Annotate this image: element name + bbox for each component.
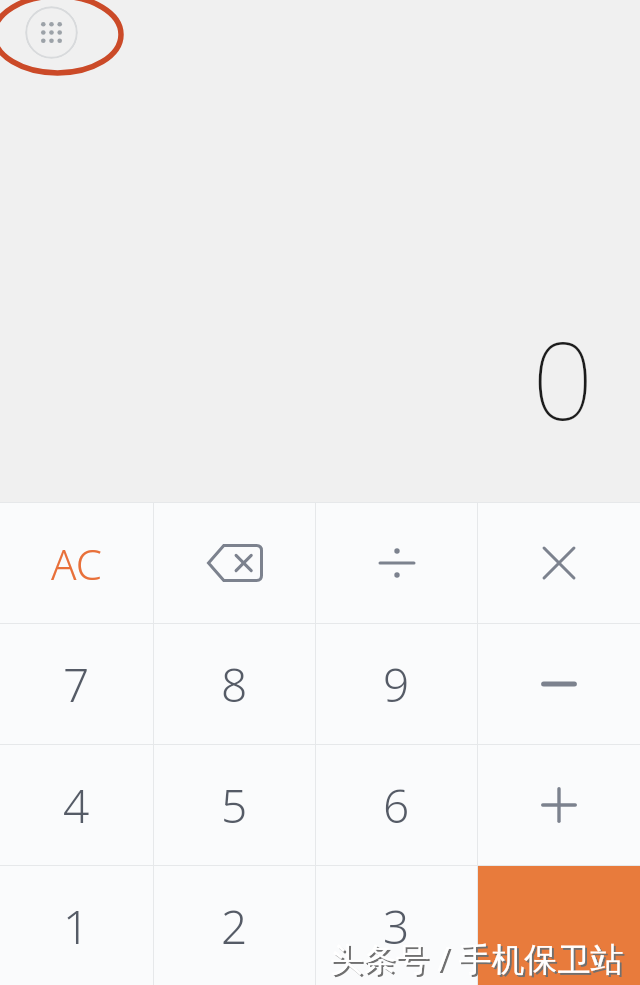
button[interactable]: Apps (25, 6, 78, 59)
staticText: 1 (63, 895, 90, 958)
button[interactable]: Divide (316, 503, 477, 623)
button[interactable]: Multiply (478, 503, 640, 623)
button[interactable]: 4 (0, 745, 153, 865)
staticText: 8 (221, 653, 248, 716)
button[interactable]: 1 (0, 866, 153, 985)
staticText: 头条号 / 手机保卫站 (332, 938, 626, 983)
staticText: 6 (383, 774, 410, 837)
button[interactable]: 5 (154, 745, 315, 865)
button[interactable]: Minus (478, 624, 640, 744)
staticText: 5 (221, 774, 248, 837)
button[interactable]: 8 (154, 624, 315, 744)
button[interactable]: Equals (478, 866, 640, 985)
button[interactable]: 2 (154, 866, 315, 985)
staticText: AC (51, 535, 102, 592)
staticText: 4 (63, 774, 90, 837)
button[interactable]: 3 (316, 866, 477, 985)
staticText: 7 (63, 653, 90, 716)
staticText: 0 (532, 305, 594, 452)
staticText: 9 (383, 653, 410, 716)
button[interactable]: 7 (0, 624, 153, 744)
staticText: 2 (221, 895, 248, 958)
button[interactable]: 9 (316, 624, 477, 744)
staticText: 3 (383, 895, 410, 958)
button[interactable]: Plus (478, 745, 640, 865)
button[interactable]: AC (0, 503, 153, 623)
button[interactable]: 6 (316, 745, 477, 865)
button[interactable]: Backspace (154, 503, 315, 623)
staticText: 头条号 / 手机保卫站 (330, 936, 624, 981)
